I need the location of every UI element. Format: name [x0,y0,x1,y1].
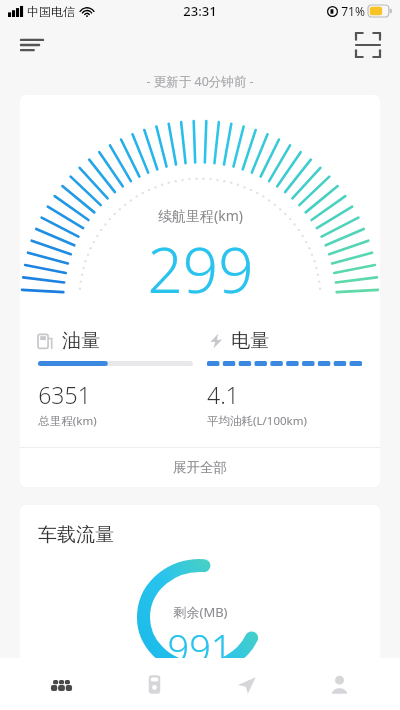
staticText: 71% [341,3,365,19]
staticText: - 更新于 40分钟前 - [146,73,254,90]
staticText: 电量 [231,329,269,353]
staticText: 6351 [38,379,91,410]
staticText: 299 [147,227,254,311]
staticText: 剩余(MB) [173,603,228,621]
button[interactable]: Profile [307,658,371,710]
staticText: 续航里程(km) [158,206,243,225]
staticText: 991 [167,622,233,665]
staticText: 23:31 [183,2,217,20]
button[interactable]: Menu [10,23,54,67]
button[interactable]: Car [29,658,93,710]
button[interactable]: Scan QR code [346,23,390,67]
button[interactable]: Navigation [214,658,278,710]
staticText: 油量 [62,329,100,353]
staticText: 总里程(km) [38,413,97,429]
button[interactable]: 展开全部 [20,448,380,487]
button[interactable]: Remote control [122,658,186,710]
staticText: 车载流量 [38,523,114,547]
staticText: 4.1 [207,379,239,410]
staticText: 平均油耗(L/100km) [207,413,307,429]
staticText: 中国电信 [27,4,75,19]
staticText: 展开全部 [173,459,227,476]
